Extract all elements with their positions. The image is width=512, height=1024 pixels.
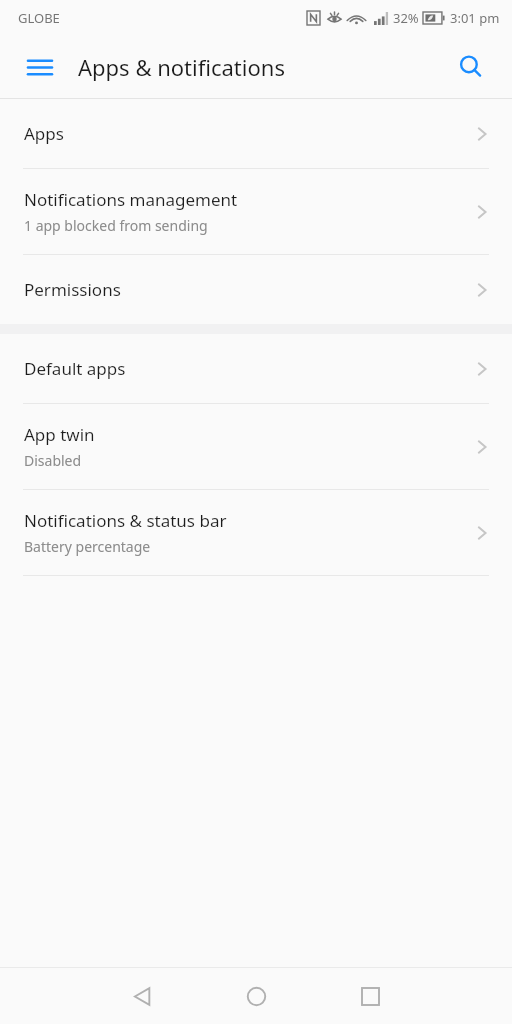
staticText: 1 app blocked from sending [24,216,208,235]
staticText: Apps & notifications [78,52,285,82]
button[interactable]: Recent apps [332,968,408,1024]
staticText: 32% [393,9,419,27]
button[interactable]: Home [218,968,294,1024]
button[interactable]: Default apps [0,334,512,403]
button[interactable]: App twin [0,404,512,489]
button[interactable]: Back [104,968,180,1024]
button[interactable]: Notifications management [0,169,512,254]
staticText: Permissions [24,278,121,301]
button[interactable]: Open navigation menu [16,43,64,91]
staticText: Notifications & status bar [24,509,227,532]
staticText: Default apps [24,357,126,380]
button[interactable]: Search [447,43,495,91]
staticText: Notifications management [24,188,238,211]
staticText: 3:01 pm [450,9,500,27]
staticText: GLOBE [18,9,60,27]
button[interactable]: Apps [0,99,512,168]
staticText: Disabled [24,451,82,470]
staticText: App twin [24,423,95,446]
staticText: Battery percentage [24,537,151,556]
button[interactable]: Notifications & status bar [0,490,512,575]
button[interactable]: Permissions [0,255,512,324]
staticText: Apps [24,122,64,145]
